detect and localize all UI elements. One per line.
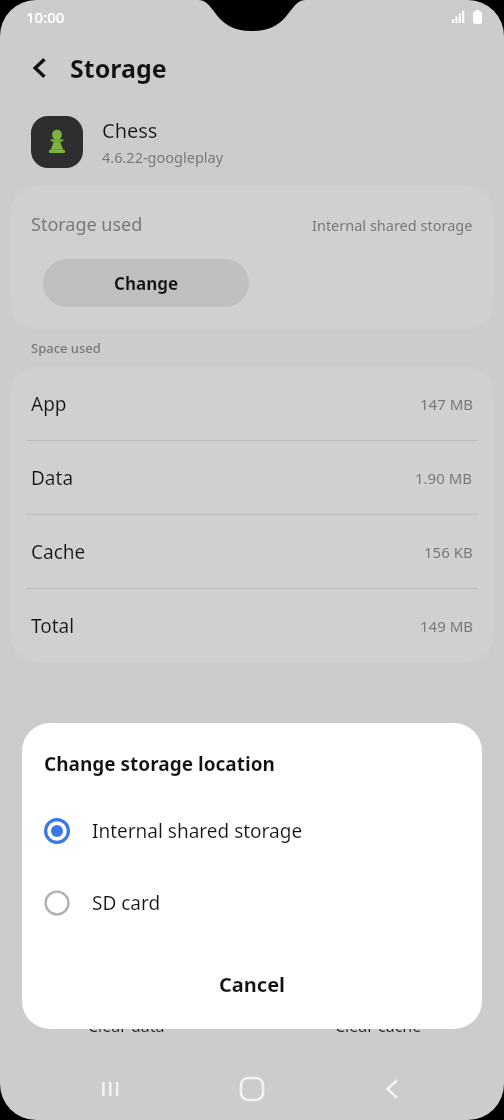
button[interactable]: Clear data <box>0 994 252 1058</box>
button[interactable]: Data <box>10 440 494 514</box>
staticText: Change <box>114 272 179 295</box>
button[interactable]: App <box>10 367 494 440</box>
button[interactable]: Back <box>364 1061 420 1117</box>
staticText: SD card <box>92 890 161 916</box>
staticText: Clear cache <box>335 1015 422 1037</box>
staticText: 4.6.22-googleplay <box>102 147 224 167</box>
staticText: Change storage location <box>44 751 275 777</box>
staticText: Clear data <box>88 1015 165 1037</box>
button[interactable]: Total <box>10 588 494 662</box>
staticText: Storage used <box>31 212 143 237</box>
button[interactable]: Change <box>43 259 249 307</box>
staticText: Storage <box>70 51 167 85</box>
button[interactable]: Cache <box>10 514 494 588</box>
staticText: 156 KB <box>424 542 473 562</box>
staticText: Cancel <box>219 971 286 998</box>
staticText: Space used <box>31 339 101 357</box>
staticText: Internal shared storage <box>312 215 473 235</box>
button[interactable]: SD card <box>22 881 482 925</box>
staticText: Internal shared storage <box>92 818 303 844</box>
staticText: Cache <box>31 539 86 565</box>
button[interactable]: Home <box>224 1061 280 1117</box>
button[interactable]: Cancel <box>22 953 482 1015</box>
staticText: App <box>31 391 67 417</box>
button[interactable]: Recent apps <box>84 1061 140 1117</box>
staticText: 1.90 MB <box>415 468 473 488</box>
button[interactable]: Back <box>18 46 62 90</box>
staticText: Data <box>31 465 74 491</box>
button[interactable]: Internal shared storage <box>22 809 482 853</box>
button[interactable]: Clear cache <box>252 994 504 1058</box>
staticText: Chess <box>102 117 158 144</box>
staticText: 10:00 <box>26 7 65 27</box>
staticText: 147 MB <box>420 394 473 414</box>
staticText: 149 MB <box>420 616 473 636</box>
staticText: Total <box>31 613 75 639</box>
